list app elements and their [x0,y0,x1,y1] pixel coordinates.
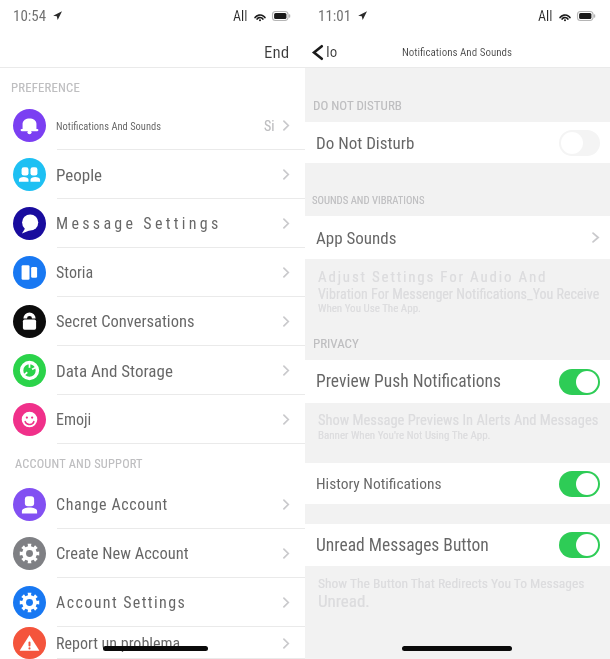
button[interactable]: Unread Messages Button [305,524,610,566]
staticText: Emoji [56,410,92,429]
button[interactable]: Message Settings [0,199,305,248]
staticText: Data And Storage [56,361,173,381]
staticText: History Notifications [316,475,442,493]
staticText: All [233,8,248,24]
staticText: DO NOT DISTURB [313,98,402,113]
button[interactable]: Create New Account [0,529,305,578]
staticText: Secret Conversations [56,312,195,331]
staticText: 11:01 [318,7,352,25]
button[interactable]: People [0,150,305,199]
button[interactable]: Change Account [0,480,305,529]
staticText: Account Settings [56,593,187,612]
staticText: PRIVACY [313,336,359,351]
staticText: Report un problema [56,634,181,653]
staticText: End [264,42,290,62]
button[interactable]: History Notifications [305,463,610,504]
staticText: Notifications And Sounds [402,46,513,59]
button[interactable]: End [252,39,305,65]
staticText: Do Not Disturb [316,133,415,153]
staticText: SOUNDS AND VIBRATIONS [312,194,425,207]
button[interactable]: Emoji [0,395,305,444]
staticText: Create New Account [56,544,189,563]
button[interactable]: Account Settings [0,578,305,627]
staticText: PREFERENCE [11,80,80,95]
button[interactable]: Storia [0,248,305,297]
staticText: Change Account [56,495,168,514]
staticText: All [538,8,553,24]
button[interactable]: Back [305,40,348,64]
staticText: Storia [56,263,94,282]
staticText: 10:54 [13,7,47,25]
staticText: Preview Push Notifications [316,371,501,392]
staticText: People [56,165,103,185]
button[interactable]: Data And Storage [0,346,305,395]
staticText: ACCOUNT AND SUPPORT [15,456,143,471]
staticText: When You Use The App. [318,302,421,315]
staticText: Vibration For Messenger Notifications_Yo… [318,286,600,302]
button[interactable]: Preview Push Notifications [305,360,610,403]
button[interactable]: Do Not Disturb [305,122,610,163]
staticText: Show The Button That Redirects You To Me… [318,575,585,591]
staticText: Adjust Settings For Audio And [318,268,548,286]
staticText: Io [326,43,338,61]
staticText: App Sounds [316,228,397,248]
button[interactable]: Report un problema [0,627,305,659]
staticText: Unread Messages Button [316,535,489,556]
staticText: Message Settings [56,214,222,233]
staticText: Unread. [318,591,370,611]
staticText: Show Message Previews In Alerts And Mess… [318,412,599,429]
staticText: Si [264,118,275,134]
staticText: Notifications And Sounds [56,120,162,132]
staticText: Banner When You're Not Using The App. [318,429,491,442]
button[interactable]: Secret Conversations [0,297,305,346]
button[interactable]: App Sounds [305,216,610,259]
button[interactable]: Notifications And Sounds [0,101,305,150]
